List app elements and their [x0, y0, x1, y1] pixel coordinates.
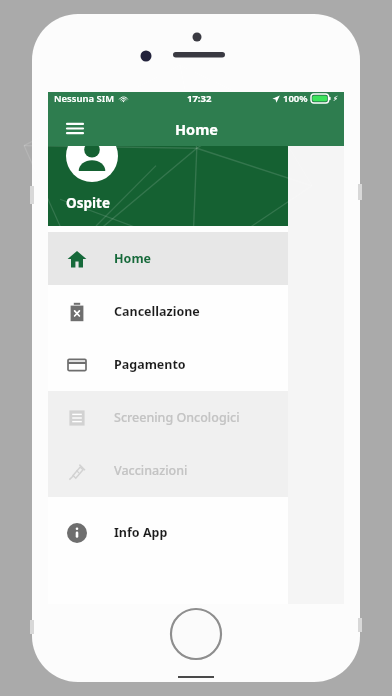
staticText: Screening Oncologici	[114, 409, 240, 426]
button[interactable]: Pagamento	[48, 338, 288, 391]
staticText: servizio dedicato ai pagamenti.	[62, 415, 259, 433]
staticText: Cancellazione	[114, 303, 200, 320]
staticText: solo per utenti registrati.	[62, 470, 219, 488]
staticText: Nessuna SIM	[54, 92, 115, 105]
staticText: un esame devi selezionare	[62, 283, 229, 301]
button[interactable]: Home	[48, 232, 288, 285]
staticText: ⚡	[333, 95, 338, 103]
button[interactable]: Open navigation menu	[60, 114, 90, 144]
staticText: la struttura e poi con	[62, 305, 194, 323]
staticText: Home	[114, 250, 152, 267]
staticText: 100%	[283, 92, 308, 105]
staticText: Pagamento	[114, 356, 186, 373]
staticText: Info App	[114, 524, 168, 541]
button[interactable]: Info App	[48, 506, 288, 559]
staticText: Home	[175, 119, 218, 139]
staticText: Ospite	[66, 194, 110, 212]
button[interactable]: Cancellazione	[48, 285, 288, 338]
staticText: Benvenuto, per prenotare	[62, 250, 227, 268]
button[interactable]: Screening Oncologici	[48, 391, 288, 444]
staticText: delle prestazioni tramite il	[62, 382, 227, 400]
staticText: Vaccinazioni	[114, 462, 188, 479]
staticText: 17:32	[187, 92, 212, 105]
button[interactable]: Vaccinazioni	[48, 444, 288, 497]
staticText: Puoi anche gestire i pagamenti	[62, 360, 259, 378]
